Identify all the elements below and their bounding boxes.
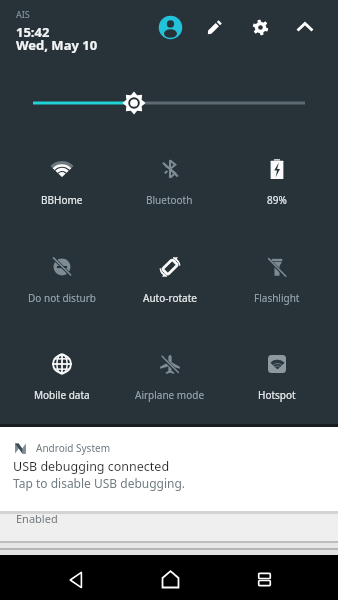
staticText: Auto-rotate	[143, 291, 197, 305]
staticText: Airplane mode	[135, 388, 205, 402]
button[interactable]: Flashlight	[223, 228, 330, 305]
button[interactable]: Back	[52, 555, 100, 600]
button[interactable]: Enabled	[0, 511, 338, 541]
button[interactable]: Hotspot	[223, 325, 330, 402]
staticText: Hotspot	[258, 388, 296, 402]
staticText: Mobile data	[34, 388, 90, 402]
button[interactable]: Edit	[193, 5, 237, 49]
button[interactable]: Recents	[240, 555, 288, 600]
button[interactable]: Do not disturb	[8, 228, 116, 305]
button[interactable]: Android System	[0, 427, 338, 511]
staticText: BBHome	[41, 193, 83, 207]
button[interactable]: Collapse	[283, 5, 327, 49]
button[interactable]: 89%	[223, 130, 330, 207]
button[interactable]: Home	[146, 555, 194, 600]
staticText: Flashlight	[254, 291, 300, 305]
button[interactable]: Settings	[238, 5, 282, 49]
staticText: Do not disturb	[28, 291, 96, 305]
button[interactable]: BBHome	[8, 130, 116, 207]
staticText: Wed, May 10	[16, 36, 98, 54]
staticText: 15:42	[16, 23, 50, 41]
button[interactable]: Brightness	[0, 85, 338, 121]
button[interactable]: Auto-rotate	[116, 228, 223, 305]
button[interactable]: Account	[148, 5, 192, 49]
button[interactable]: Bluetooth	[116, 130, 223, 207]
staticText: USB debugging connected	[13, 458, 170, 475]
button[interactable]: Airplane mode	[116, 325, 223, 402]
staticText: 89%	[267, 193, 287, 207]
staticText: Bluetooth	[146, 193, 193, 207]
staticText: Tap to disable USB debugging.	[13, 475, 186, 491]
staticText: Enabled	[16, 511, 58, 526]
button[interactable]: Mobile data	[8, 325, 116, 402]
staticText: Android System	[36, 441, 111, 455]
staticText: AIS	[16, 8, 30, 20]
